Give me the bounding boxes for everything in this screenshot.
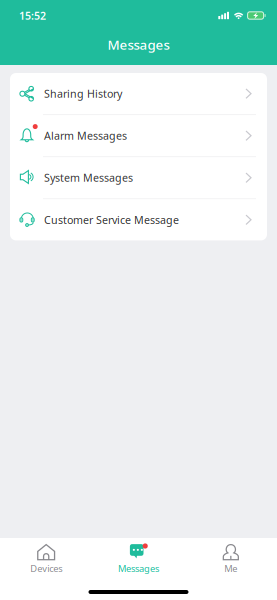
staticText: System Messages [44,171,133,185]
staticText: Sharing History [44,86,122,101]
button[interactable]: System Messages [10,157,267,198]
button[interactable]: Alarm Messages [10,115,267,156]
staticText: Messages [107,36,169,53]
staticText: Alarm Messages [44,129,127,143]
button[interactable]: Sharing History [10,73,267,114]
button[interactable]: Me [185,537,277,580]
staticText: Customer Service Message [44,213,179,227]
button[interactable]: Messages [0,37,277,52]
button[interactable]: Messages [92,537,185,580]
staticText: 15:52 [19,8,46,23]
button[interactable]: Devices [0,537,92,580]
staticText: Messages [118,562,159,575]
staticText: Devices [30,562,62,575]
staticText: Me [224,562,237,575]
button[interactable]: Customer Service Message [10,199,267,240]
